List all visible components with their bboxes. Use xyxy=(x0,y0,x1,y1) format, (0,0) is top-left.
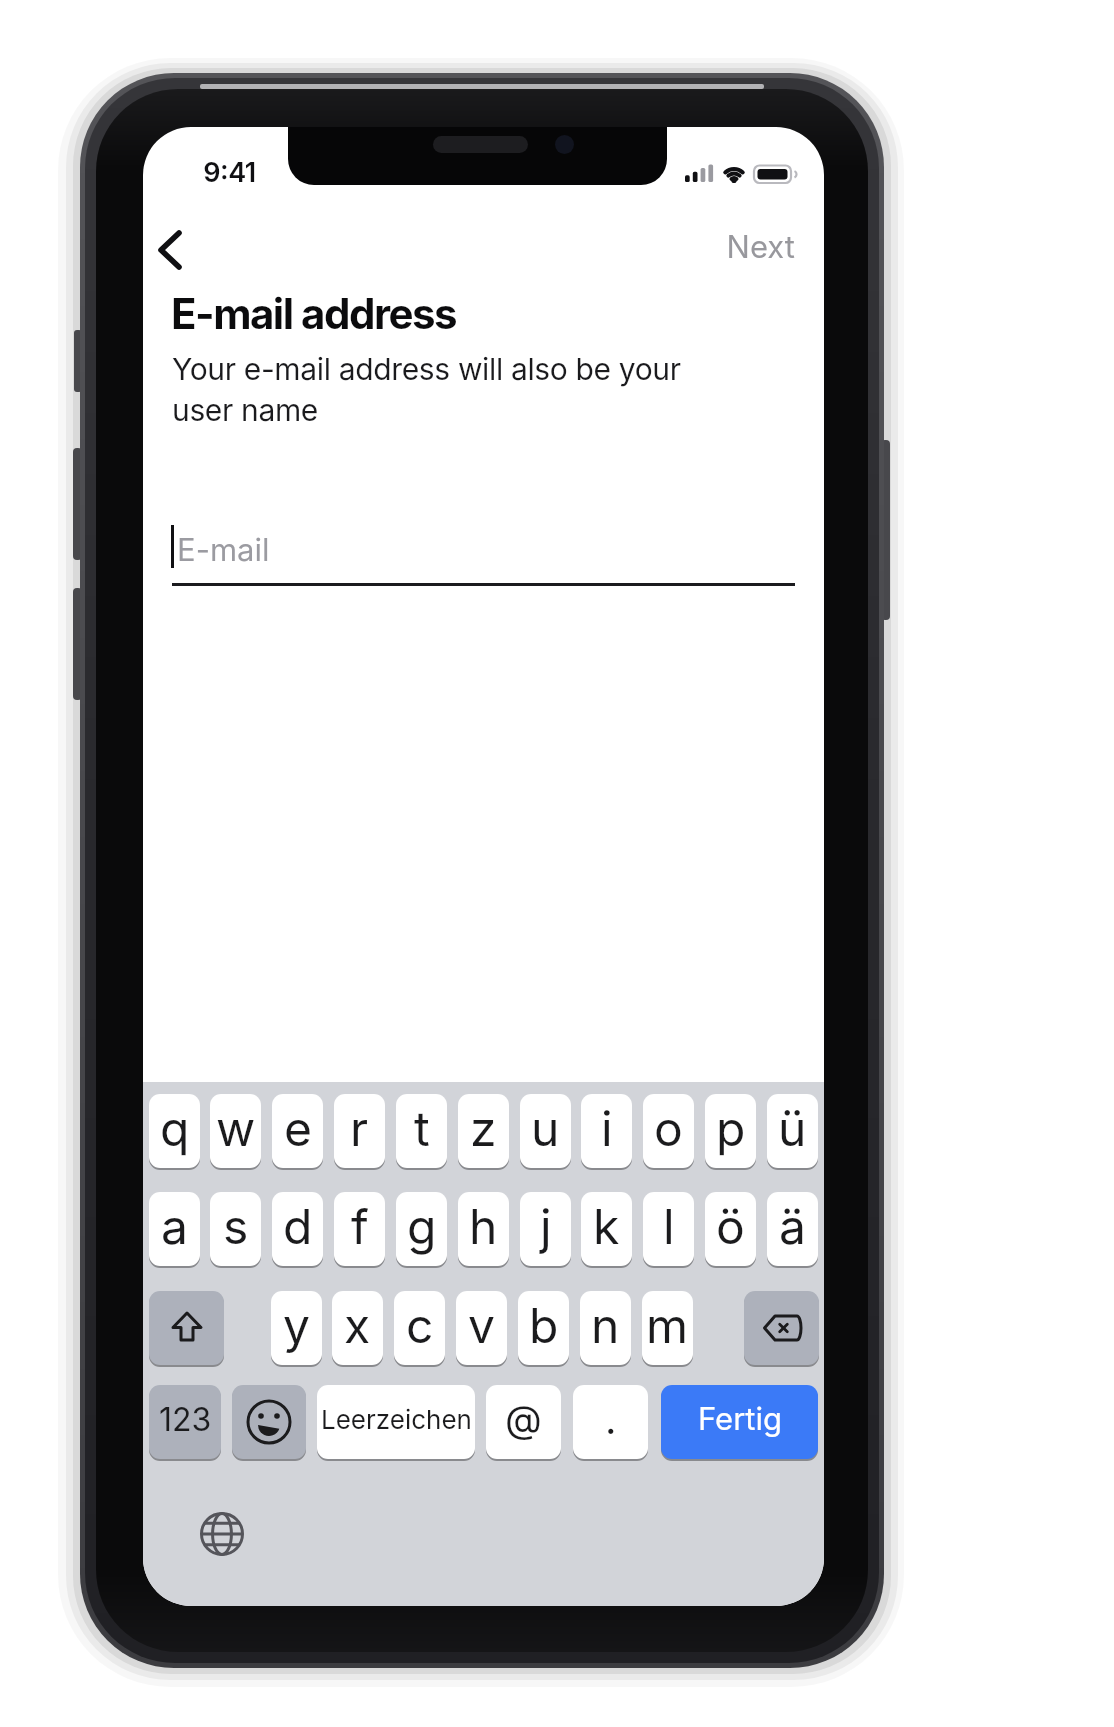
staticText: w xyxy=(216,1099,256,1157)
button[interactable] xyxy=(232,1385,306,1459)
button[interactable]: k xyxy=(581,1192,632,1266)
button[interactable]: u xyxy=(520,1094,571,1168)
button[interactable]: n xyxy=(580,1291,631,1365)
staticText: x xyxy=(344,1296,371,1354)
staticText: c xyxy=(406,1296,434,1354)
button[interactable]: 123 xyxy=(149,1385,221,1459)
button[interactable]: Fertig xyxy=(661,1385,818,1459)
staticText: Your e-mail address will also be your us… xyxy=(172,351,681,428)
staticText: z xyxy=(470,1099,497,1157)
button[interactable]: p xyxy=(705,1094,756,1168)
staticText: p xyxy=(716,1099,746,1157)
staticText: E-mail address xyxy=(171,288,457,339)
button[interactable] xyxy=(198,1510,246,1558)
staticText: Fertig xyxy=(698,1400,782,1438)
button[interactable]: w xyxy=(210,1094,261,1168)
staticText: t xyxy=(414,1099,430,1157)
staticText: m xyxy=(646,1296,689,1354)
staticText: @ xyxy=(505,1396,542,1442)
button[interactable]: t xyxy=(396,1094,447,1168)
staticText: 9:41 xyxy=(193,156,266,189)
button[interactable]: s xyxy=(210,1192,261,1266)
staticText: y xyxy=(283,1296,310,1354)
staticText: Leerzeichen xyxy=(321,1404,472,1435)
button[interactable] xyxy=(744,1291,819,1365)
staticText: o xyxy=(654,1099,683,1157)
button[interactable]: e xyxy=(272,1094,323,1168)
button[interactable]: Leerzeichen xyxy=(317,1385,475,1459)
staticText: b xyxy=(529,1296,559,1354)
button[interactable]: o xyxy=(643,1094,694,1168)
staticText: 123 xyxy=(159,1400,212,1439)
button[interactable]: z xyxy=(458,1094,509,1168)
staticText: r xyxy=(350,1099,369,1157)
staticText: . xyxy=(605,1395,617,1443)
button[interactable]: x xyxy=(332,1291,383,1365)
staticText: k xyxy=(593,1197,620,1255)
button[interactable]: m xyxy=(642,1291,693,1365)
staticText: n xyxy=(591,1296,620,1354)
button[interactable]: j xyxy=(520,1192,571,1266)
button[interactable]: f xyxy=(334,1192,385,1266)
staticText: E-mail xyxy=(177,531,270,569)
staticText: v xyxy=(468,1296,495,1354)
button[interactable]: ö xyxy=(705,1192,756,1266)
button[interactable]: Next xyxy=(595,228,795,266)
button[interactable] xyxy=(143,217,199,273)
button[interactable]: g xyxy=(396,1192,447,1266)
staticText: q xyxy=(160,1099,190,1157)
staticText: g xyxy=(407,1197,437,1255)
button[interactable]: v xyxy=(456,1291,507,1365)
staticText: f xyxy=(351,1197,369,1255)
staticText: d xyxy=(283,1197,313,1255)
staticText: ä xyxy=(779,1197,806,1255)
button[interactable]: c xyxy=(394,1291,445,1365)
button[interactable]: q xyxy=(149,1094,200,1168)
button[interactable]: h xyxy=(458,1192,509,1266)
staticText: ü xyxy=(778,1099,807,1157)
button[interactable]: d xyxy=(272,1192,323,1266)
button[interactable]: r xyxy=(334,1094,385,1168)
button[interactable]: ü xyxy=(767,1094,818,1168)
staticText: e xyxy=(284,1099,312,1157)
staticText: ö xyxy=(716,1197,745,1255)
button[interactable]: a xyxy=(149,1192,200,1266)
staticText: h xyxy=(469,1197,498,1255)
button[interactable]: . xyxy=(573,1385,648,1459)
button[interactable]: y xyxy=(271,1291,322,1365)
button[interactable] xyxy=(149,1291,224,1365)
staticText: i xyxy=(601,1099,613,1157)
button[interactable]: l xyxy=(643,1192,694,1266)
button[interactable]: ä xyxy=(767,1192,818,1266)
staticText: u xyxy=(531,1099,560,1157)
staticText: a xyxy=(161,1197,188,1255)
button[interactable]: @ xyxy=(486,1385,561,1459)
staticText: s xyxy=(223,1197,249,1255)
staticText: j xyxy=(540,1197,552,1255)
staticText: l xyxy=(663,1197,675,1255)
button[interactable]: b xyxy=(518,1291,569,1365)
button[interactable]: i xyxy=(581,1094,632,1168)
